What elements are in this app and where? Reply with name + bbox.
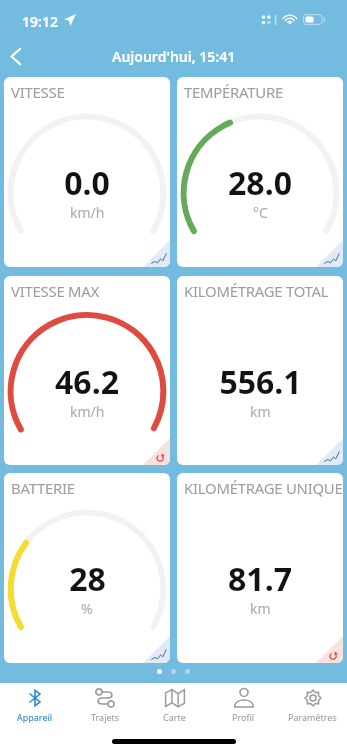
- staticText: Paramètres: [288, 711, 337, 723]
- staticText: Trajets: [91, 711, 120, 723]
- staticText: °C: [253, 203, 268, 222]
- button[interactable]: VITESSE: [4, 77, 170, 267]
- staticText: km/h: [70, 203, 105, 222]
- staticText: 556.1: [219, 360, 302, 404]
- staticText: Profil: [232, 711, 255, 723]
- button[interactable]: Profil: [209, 683, 278, 733]
- button[interactable]: KILOMÉTRAGE TOTAL: [177, 276, 343, 465]
- staticText: km/h: [70, 402, 105, 421]
- staticText: VITESSE: [11, 82, 65, 102]
- staticText: VITESSE MAX: [11, 281, 100, 301]
- staticText: KILOMÉTRAGE TOTAL: [184, 281, 329, 301]
- button[interactable]: Carte: [140, 683, 209, 733]
- staticText: BATTERIE: [11, 478, 75, 498]
- staticText: km: [250, 599, 271, 618]
- staticText: 81.7: [228, 557, 292, 601]
- staticText: km: [250, 402, 271, 421]
- staticText: Aujourd'hui, 15:41: [112, 47, 236, 66]
- button[interactable]: BATTERIE: [4, 473, 170, 663]
- button[interactable]: Paramètres: [278, 683, 347, 733]
- staticText: Carte: [163, 711, 186, 723]
- staticText: 28.0: [228, 161, 292, 205]
- staticText: 19:12: [22, 12, 58, 31]
- staticText: TEMPÉRATURE: [184, 82, 284, 102]
- staticText: 0.0: [64, 161, 110, 205]
- button[interactable]: Back: [0, 38, 35, 74]
- staticText: 46.2: [55, 360, 119, 404]
- button[interactable]: VITESSE MAX: [4, 276, 170, 465]
- button[interactable]: Appareil: [0, 683, 70, 733]
- button[interactable]: TEMPÉRATURE: [177, 77, 343, 267]
- button[interactable]: Trajets: [70, 683, 140, 733]
- staticText: KILOMÉTRAGE UNIQUE: [184, 478, 343, 498]
- staticText: Appareil: [17, 711, 53, 723]
- staticText: %: [81, 599, 93, 618]
- staticText: 28: [69, 557, 106, 601]
- button[interactable]: KILOMÉTRAGE UNIQUE: [177, 473, 343, 663]
